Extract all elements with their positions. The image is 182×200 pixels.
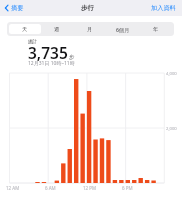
staticText: 加入資料 (151, 4, 176, 12)
staticText: 12月31日 10時–11時 (28, 60, 75, 67)
button[interactable]: 摘要 (3, 0, 25, 16)
staticText: 4,000 (166, 71, 177, 77)
staticText: 週 (54, 26, 60, 33)
staticText: 天 (22, 26, 28, 33)
staticText: 3,735 (28, 42, 68, 63)
button[interactable]: 加入資料 (150, 0, 177, 16)
button[interactable]: 6個月 (106, 24, 139, 34)
staticText: 步 (69, 54, 75, 61)
staticText: 年 (153, 26, 159, 33)
staticText: 12 AM (6, 185, 20, 191)
staticText: 12 PM (83, 185, 97, 191)
button[interactable]: 年 (139, 24, 172, 34)
button[interactable]: 天 (9, 24, 41, 34)
staticText: 摘要 (11, 4, 24, 12)
button[interactable]: 週 (41, 24, 73, 34)
staticText: 步行 (81, 4, 94, 12)
staticText: 2,000 (166, 126, 177, 132)
staticText: 6 PM (122, 185, 133, 191)
staticText: 6個月 (116, 26, 130, 33)
button[interactable]: 月 (73, 24, 106, 34)
staticText: 月 (87, 26, 93, 33)
staticText: 總計 (28, 39, 38, 45)
staticText: 6 AM (45, 185, 56, 191)
